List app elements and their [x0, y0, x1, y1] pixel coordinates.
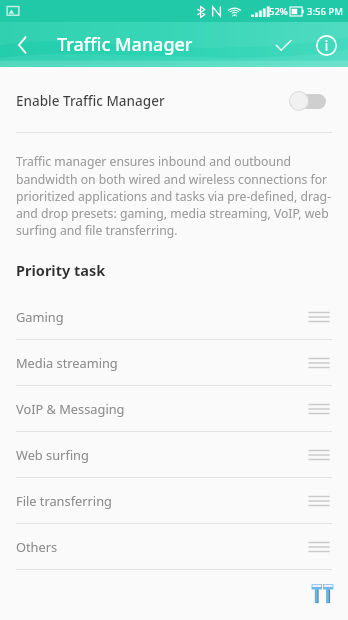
other: Reorder — [306, 445, 332, 465]
staticText: 3:56 PM — [307, 5, 343, 18]
button[interactable]: Media streaming — [0, 340, 348, 386]
button[interactable]: Enable Traffic Manager — [0, 88, 348, 114]
other: Reorder — [306, 353, 332, 373]
other: Reorder — [306, 307, 332, 327]
staticText: File transferring — [16, 492, 112, 509]
button[interactable]: Gaming — [0, 294, 348, 340]
staticText: Media streaming — [16, 354, 118, 371]
staticText: 52% — [269, 5, 288, 18]
other: Reorder — [306, 399, 332, 419]
button[interactable]: Information — [304, 23, 348, 67]
staticText: Enable Traffic Manager — [16, 92, 165, 110]
button[interactable]: Confirm — [262, 24, 304, 66]
staticText: Gaming — [16, 308, 64, 325]
button[interactable]: Others — [0, 524, 348, 570]
button[interactable]: Back — [0, 23, 44, 67]
button[interactable]: Web surfing — [0, 432, 348, 478]
button[interactable]: VoIP & Messaging — [0, 386, 348, 432]
other: Reorder — [306, 537, 332, 557]
staticText: Web surfing — [16, 446, 89, 463]
staticText: Traffic manager ensures inbound and outb… — [16, 153, 332, 238]
button[interactable]: File transferring — [0, 478, 348, 524]
other: Reorder — [306, 491, 332, 511]
staticText: Others — [16, 538, 58, 555]
staticText: VoIP & Messaging — [16, 400, 125, 417]
staticText: Traffic Manager — [57, 32, 193, 57]
staticText: Priority task — [16, 260, 106, 280]
button[interactable]: Enable Traffic Manager toggle — [288, 88, 332, 114]
